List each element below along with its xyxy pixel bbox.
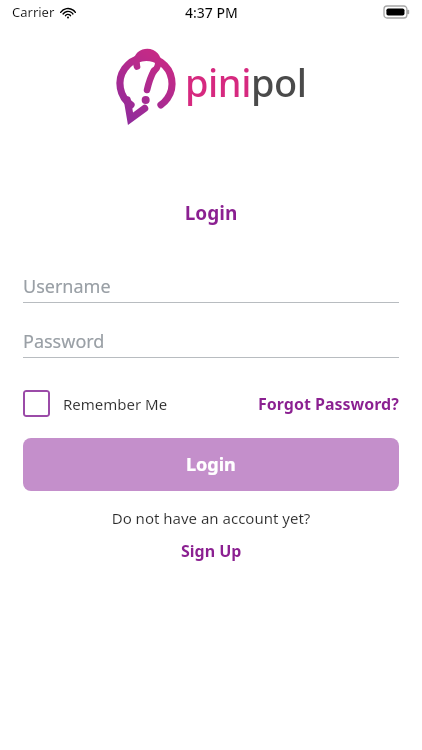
staticText: Sign Up — [181, 540, 242, 562]
button[interactable]: Sign Up — [171, 538, 252, 564]
staticText: Carrier — [12, 3, 55, 21]
staticText: Login — [186, 452, 236, 477]
staticText: Remember Me — [63, 394, 168, 414]
button[interactable]: Username — [23, 270, 399, 302]
staticText: Forgot Password? — [258, 393, 399, 415]
staticText: Password — [23, 329, 105, 354]
staticText: 4:37 PM — [185, 3, 238, 22]
button[interactable]: Forgot Password? — [258, 389, 399, 419]
staticText: Username — [23, 274, 111, 299]
button[interactable]: Login — [23, 438, 399, 491]
staticText: Do not have an account yet? — [0, 508, 422, 528]
button[interactable]: Password — [23, 325, 399, 357]
staticText: pinipol — [185, 56, 307, 108]
button[interactable]: Remember Me — [23, 386, 168, 421]
staticText: Login — [0, 200, 422, 226]
